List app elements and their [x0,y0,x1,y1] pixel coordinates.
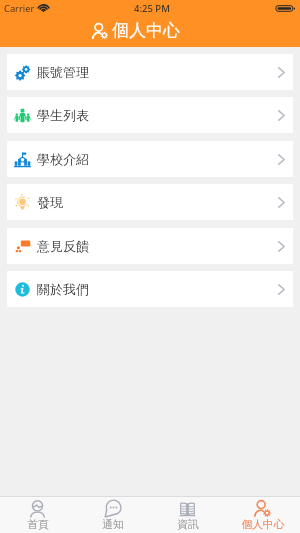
staticText: 學生列表 [37,107,89,123]
button[interactable]: 資訊 [150,497,225,533]
button[interactable]: 通知 [75,497,150,533]
staticText: Carrier [4,2,35,15]
staticText: 首頁 [27,518,49,532]
staticText: 關於我們 [37,281,89,297]
button[interactable]: 首頁 [0,497,75,533]
button[interactable]: 學校介紹 [7,141,293,177]
button[interactable]: 學生列表 [7,97,293,133]
staticText: 資訊 [177,518,199,532]
staticText: 發現 [37,194,63,210]
button[interactable]: 意見反饋 [7,228,293,264]
staticText: 4:25 PM [134,2,170,15]
staticText: 通知 [102,518,124,532]
button[interactable]: 發現 [7,184,293,220]
button[interactable]: 關於我們 [7,271,293,307]
staticText: 意見反饋 [37,238,89,254]
button[interactable]: 個人中心 [225,497,300,533]
button[interactable]: 賬號管理 [7,54,293,90]
staticText: 個人中心 [112,20,180,41]
staticText: 個人中心 [241,518,285,532]
staticText: 學校介紹 [37,151,89,167]
staticText: 賬號管理 [37,64,89,80]
